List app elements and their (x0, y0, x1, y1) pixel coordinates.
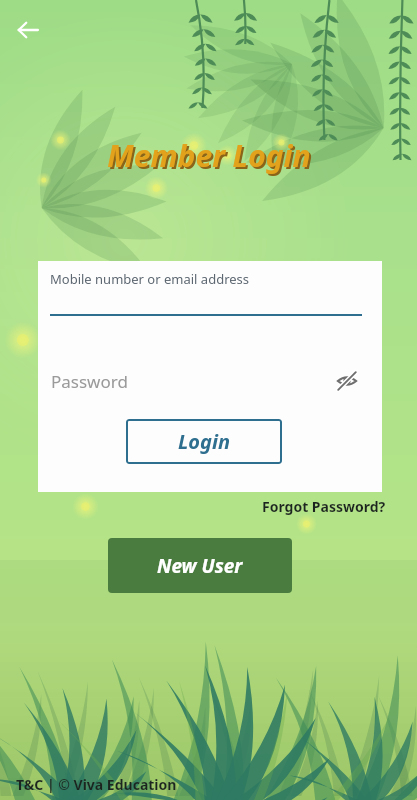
staticText: Password (51, 370, 128, 393)
staticText: Forgot Password? (262, 497, 386, 516)
staticText: Mobile number or email address (50, 270, 250, 288)
button[interactable]: Forgot Password? (250, 494, 386, 518)
staticText: Member Login (109, 137, 313, 178)
button[interactable]: T&C | © Viva Education (16, 775, 177, 794)
button[interactable]: New User (108, 538, 292, 593)
staticText: Login (178, 428, 231, 455)
button[interactable]: Show password (334, 368, 360, 394)
button[interactable]: Login (126, 419, 282, 464)
staticText: New User (157, 553, 243, 579)
staticText: T&C | © Viva Education (16, 775, 177, 794)
staticText: Member Login (107, 135, 311, 176)
button[interactable]: Password (38, 364, 382, 398)
button[interactable]: Back (8, 10, 48, 50)
